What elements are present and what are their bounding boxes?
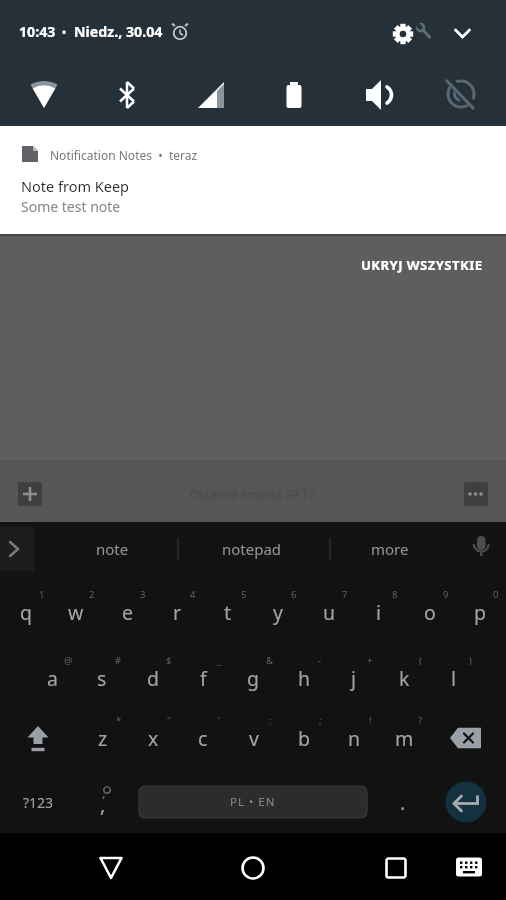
button[interactable]: c <box>180 712 226 764</box>
staticText: ) <box>469 654 472 667</box>
button[interactable]: r <box>154 586 200 638</box>
button[interactable]: p <box>457 586 503 638</box>
staticText: UKRYJ WSZYSTKIE <box>361 256 483 274</box>
button[interactable] <box>442 778 490 826</box>
button[interactable] <box>13 65 75 125</box>
button[interactable]: y <box>255 586 301 638</box>
button[interactable] <box>445 16 479 50</box>
staticText: o <box>424 599 436 626</box>
staticText: p <box>474 599 486 626</box>
button[interactable]: g <box>230 652 276 704</box>
staticText: h <box>298 665 311 692</box>
button[interactable] <box>0 527 34 571</box>
staticText: . <box>400 789 406 816</box>
staticText: k <box>399 665 410 692</box>
button[interactable]: a <box>29 652 75 704</box>
staticText: 1 <box>39 588 45 601</box>
staticText: c <box>198 725 208 752</box>
button[interactable]: notepad <box>182 526 322 572</box>
button[interactable]: f <box>180 652 226 704</box>
staticText: 0 <box>493 588 499 601</box>
staticText: y <box>273 599 283 626</box>
button[interactable]: u <box>306 586 352 638</box>
staticText: x <box>148 725 159 752</box>
staticText: Some test note <box>21 197 121 216</box>
staticText: , <box>100 791 106 818</box>
staticText: 6 <box>291 588 297 601</box>
button[interactable]: Notification Notes • teraz <box>0 126 506 234</box>
button[interactable]: q <box>3 586 49 638</box>
button[interactable] <box>218 840 288 896</box>
button[interactable]: k <box>381 652 427 704</box>
button[interactable]: h <box>281 652 327 704</box>
button[interactable] <box>436 714 496 762</box>
button[interactable]: ?123 <box>8 778 68 826</box>
staticText: note <box>96 539 129 559</box>
button[interactable] <box>76 840 146 896</box>
staticText: ' <box>218 714 221 727</box>
button[interactable] <box>96 65 158 125</box>
button[interactable]: t <box>205 586 251 638</box>
button[interactable]: , <box>81 780 125 828</box>
staticText: more <box>371 539 409 559</box>
staticText: # <box>115 654 122 667</box>
staticText: * <box>116 714 122 727</box>
button[interactable]: s <box>79 652 125 704</box>
button[interactable] <box>456 474 496 514</box>
staticText: w <box>68 599 84 626</box>
button[interactable] <box>10 474 50 514</box>
staticText: Note from Keep <box>21 176 130 196</box>
button[interactable] <box>361 840 431 896</box>
button[interactable]: note <box>52 526 172 572</box>
button[interactable]: more <box>335 526 445 572</box>
button[interactable]: e <box>104 586 150 638</box>
button[interactable]: d <box>130 652 176 704</box>
button[interactable] <box>459 525 503 571</box>
button[interactable] <box>441 839 497 895</box>
staticText: r <box>173 599 182 626</box>
staticText: + <box>367 654 373 667</box>
staticText: g <box>247 665 259 692</box>
staticText: z <box>98 725 108 752</box>
staticText: f <box>200 665 207 692</box>
button[interactable]: o <box>407 586 453 638</box>
button[interactable]: b <box>281 712 327 764</box>
button[interactable]: . <box>381 778 425 826</box>
staticText: Niedz., 30.04 <box>74 22 163 41</box>
staticText: $ <box>166 654 172 667</box>
staticText: 8 <box>392 588 398 601</box>
button[interactable] <box>430 65 492 125</box>
button[interactable] <box>386 17 420 51</box>
button[interactable]: UKRYJ WSZYSTKIE <box>323 252 483 278</box>
staticText: s <box>97 665 107 692</box>
staticText: ; <box>319 714 322 727</box>
staticText: ! <box>369 714 372 727</box>
button[interactable]: x <box>130 712 176 764</box>
button[interactable]: i <box>356 586 402 638</box>
button[interactable] <box>347 65 409 125</box>
staticText: 9 <box>443 588 449 601</box>
button[interactable]: PL • EN <box>139 786 367 818</box>
button[interactable]: w <box>53 586 99 638</box>
staticText: 3 <box>140 588 146 601</box>
button[interactable]: v <box>231 712 277 764</box>
button[interactable] <box>263 65 325 125</box>
staticText: l <box>451 665 457 692</box>
button[interactable] <box>180 65 242 125</box>
staticText: @ <box>64 654 73 667</box>
staticText: 7 <box>342 588 348 601</box>
staticText: m <box>395 725 414 752</box>
staticText: PL • EN <box>230 794 276 810</box>
staticText: Notification Notes • teraz <box>50 147 198 163</box>
staticText: t <box>224 599 232 626</box>
button[interactable]: n <box>331 712 377 764</box>
button[interactable]: j <box>331 652 377 704</box>
staticText: : <box>269 714 272 727</box>
staticText: • <box>62 24 67 39</box>
button[interactable]: z <box>80 712 126 764</box>
button[interactable]: l <box>431 652 477 704</box>
button[interactable] <box>8 714 68 762</box>
staticText: ?123 <box>23 793 54 812</box>
staticText: n <box>348 725 361 752</box>
button[interactable]: m <box>381 712 427 764</box>
